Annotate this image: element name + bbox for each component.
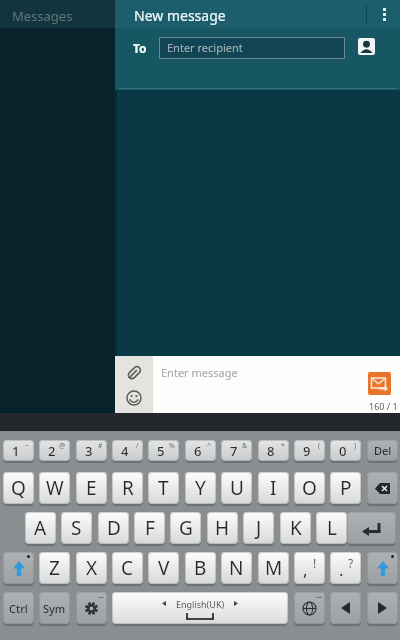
button[interactable]: 3 [76,440,107,461]
button[interactable]: Q [3,472,34,504]
button[interactable]: Enter recipient [159,37,345,59]
staticText: ~ [25,441,30,451]
button[interactable]: ... [76,592,107,624]
staticText: 6 [194,442,202,460]
staticText: N [229,555,244,581]
staticText: ( [318,441,321,451]
staticText: M [265,555,283,581]
staticText: C [121,555,134,581]
button[interactable]: ... [294,592,325,624]
button[interactable]: , [294,552,325,584]
staticText: Ctrl [9,601,28,616]
staticText: ) [354,441,357,451]
button[interactable] [358,38,375,55]
button[interactable]: M [258,552,289,584]
button[interactable] [115,356,153,413]
staticText: * [281,441,285,451]
button[interactable]: Del [367,440,398,461]
button[interactable]: Sym [39,592,70,624]
staticText: Messages [12,7,73,25]
button[interactable]: 7 [221,440,252,461]
staticText: V [158,555,170,581]
staticText: Enter message [161,365,238,380]
button[interactable]: Y [185,472,216,504]
button[interactable]: 8 [258,440,289,461]
button[interactable]: . [330,552,361,584]
staticText: ! [313,555,317,571]
button[interactable]: English(UK) [112,592,288,624]
staticText: # [98,441,103,451]
button[interactable]: L [316,512,347,544]
staticText: 7 [230,442,238,460]
staticText: 9 [303,442,311,460]
button[interactable]: S [61,512,92,544]
staticText: English(UK) [176,598,225,610]
button[interactable]: O [294,472,325,504]
button[interactable]: G [170,512,201,544]
staticText: ... [316,591,322,601]
button[interactable]: 2 [39,440,70,461]
button[interactable]: B [185,552,216,584]
button[interactable]: X [76,552,107,584]
button[interactable] [368,372,391,395]
button[interactable]: W [39,472,70,504]
staticText: Z [49,555,60,581]
button[interactable]: 0 [330,440,361,461]
button[interactable]: 5 [148,440,179,461]
button[interactable]: N [221,552,252,584]
staticText: ^ [207,441,212,451]
button[interactable]: Ctrl [3,592,34,624]
button[interactable]: H [207,512,238,544]
button[interactable]: J [243,512,274,544]
staticText: 4 [121,442,129,460]
button[interactable] [367,592,398,624]
staticText: I [270,475,277,501]
button[interactable]: Z [39,552,70,584]
staticText: X [86,555,98,581]
button[interactable]: A [25,512,56,544]
button[interactable]: 6 [185,440,216,461]
staticText: H [215,515,230,541]
staticText: & [242,441,248,451]
staticText: P [340,475,352,501]
staticText: O [302,475,317,501]
button[interactable]: 1 [3,440,34,461]
button[interactable]: K [280,512,311,544]
staticText: 8 [267,442,275,460]
staticText: A [34,515,47,541]
button[interactable]: 4 [112,440,143,461]
button[interactable]: T [148,472,179,504]
staticText: To [133,40,147,56]
staticText: , [303,558,308,581]
staticText: 1 [12,442,20,460]
staticText: Q [11,475,26,501]
staticText: 3 [85,442,93,460]
button[interactable] [3,552,34,584]
button[interactable] [347,512,396,544]
staticText: W [46,475,64,501]
button[interactable]: C [112,552,143,584]
button[interactable]: E [76,472,107,504]
staticText: Sym [43,601,66,616]
button[interactable]: V [148,552,179,584]
button[interactable] [330,592,361,624]
staticText: B [194,555,207,581]
staticText: ... [98,591,104,601]
button[interactable] [367,552,398,584]
button[interactable]: 9 [294,440,325,461]
staticText: R [122,475,134,501]
staticText: New message [134,6,226,25]
button[interactable]: U [221,472,252,504]
button[interactable] [372,0,396,28]
staticText: @ [59,441,66,451]
button[interactable]: I [258,472,289,504]
staticText: G [179,515,193,541]
button[interactable] [367,472,398,504]
button[interactable]: R [112,472,143,504]
staticText: S [71,515,82,541]
staticText: 0 [339,442,347,460]
button[interactable]: P [330,472,361,504]
staticText: 2 [48,442,56,460]
button[interactable]: D [98,512,129,544]
button[interactable]: F [134,512,165,544]
